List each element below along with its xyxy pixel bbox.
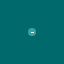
button[interactable]: Start workout xyxy=(28,28,36,36)
